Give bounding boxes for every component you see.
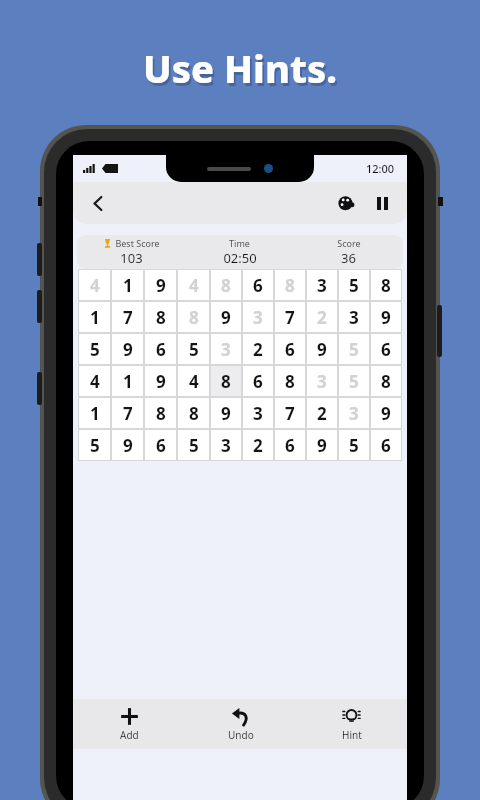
button[interactable]: 1 <box>111 365 144 397</box>
button[interactable]: 3 <box>338 397 370 429</box>
button[interactable]: Back <box>81 186 115 220</box>
staticText: 8 <box>381 370 391 393</box>
button[interactable]: 3 <box>306 269 338 301</box>
staticText: 9 <box>156 274 166 297</box>
staticText: 8 <box>285 370 295 393</box>
staticText: Score <box>337 237 361 249</box>
staticText: 9 <box>317 434 327 457</box>
button[interactable]: 6 <box>242 269 274 301</box>
button[interactable]: 5 <box>338 269 370 301</box>
staticText: 5 <box>349 370 359 393</box>
button[interactable]: 4 <box>177 365 210 397</box>
button[interactable]: 3 <box>242 301 274 333</box>
button[interactable]: 7 <box>274 301 306 333</box>
button[interactable]: 3 <box>210 429 242 461</box>
button[interactable]: 7 <box>111 301 144 333</box>
staticText: 5 <box>349 274 359 297</box>
button[interactable]: 8 <box>177 301 210 333</box>
button[interactable]: 3 <box>210 333 242 365</box>
staticText: 5 <box>189 434 199 457</box>
button[interactable]: 9 <box>370 397 402 429</box>
button[interactable]: 8 <box>370 365 402 397</box>
button[interactable]: 5 <box>338 365 370 397</box>
staticText: 6 <box>156 338 166 361</box>
staticText: 5 <box>349 338 359 361</box>
staticText: 7 <box>123 402 133 425</box>
button[interactable]: 9 <box>111 333 144 365</box>
button[interactable]: 1 <box>78 301 111 333</box>
button[interactable]: 5 <box>78 333 111 365</box>
staticText: 1 <box>90 306 100 329</box>
button[interactable]: 8 <box>144 397 177 429</box>
button[interactable]: 6 <box>274 333 306 365</box>
button[interactable]: Theme <box>331 188 361 218</box>
staticText: 8 <box>381 274 391 297</box>
button[interactable]: 6 <box>144 429 177 461</box>
button[interactable]: 8 <box>274 269 306 301</box>
button[interactable]: 9 <box>144 365 177 397</box>
button[interactable]: 1 <box>78 397 111 429</box>
staticText: 9 <box>317 338 327 361</box>
staticText: 7 <box>285 306 295 329</box>
button[interactable]: 6 <box>370 429 402 461</box>
staticText: Use Hints. <box>145 45 340 97</box>
button[interactable]: 8 <box>144 301 177 333</box>
staticText: 8 <box>189 306 199 329</box>
button[interactable]: 9 <box>306 429 338 461</box>
button[interactable]: 5 <box>177 333 210 365</box>
button[interactable]: 2 <box>306 301 338 333</box>
staticText: 3 <box>349 306 359 329</box>
button[interactable]: 2 <box>306 397 338 429</box>
button[interactable]: Pause <box>367 188 397 218</box>
button[interactable]: 6 <box>370 333 402 365</box>
staticText: 3 <box>221 338 231 361</box>
staticText: 6 <box>285 338 295 361</box>
staticText: 8 <box>221 274 231 297</box>
button[interactable]: 2 <box>242 333 274 365</box>
button[interactable]: 9 <box>144 269 177 301</box>
staticText: 3 <box>317 370 327 393</box>
button[interactable]: 5 <box>78 429 111 461</box>
button[interactable]: 5 <box>177 429 210 461</box>
staticText: 3 <box>253 306 263 329</box>
button[interactable]: 3 <box>338 301 370 333</box>
button[interactable]: 4 <box>78 365 111 397</box>
button[interactable]: 5 <box>338 333 370 365</box>
button[interactable]: 9 <box>111 429 144 461</box>
staticText: Use Hints. <box>143 42 338 94</box>
staticText: 6 <box>285 434 295 457</box>
staticText: 7 <box>285 402 295 425</box>
button[interactable]: 4 <box>177 269 210 301</box>
staticText: 4 <box>90 274 100 297</box>
staticText: 6 <box>156 434 166 457</box>
staticText: 2 <box>253 338 263 361</box>
button[interactable]: 7 <box>274 397 306 429</box>
button[interactable]: 9 <box>210 301 242 333</box>
button[interactable]: 6 <box>242 365 274 397</box>
button[interactable]: 8 <box>210 269 242 301</box>
button[interactable]: 6 <box>144 333 177 365</box>
button[interactable]: 3 <box>306 365 338 397</box>
button[interactable]: Undo <box>185 699 296 749</box>
button[interactable]: 3 <box>242 397 274 429</box>
button[interactable]: 6 <box>274 429 306 461</box>
button[interactable]: 8 <box>274 365 306 397</box>
button[interactable]: 2 <box>242 429 274 461</box>
button[interactable]: 8 <box>177 397 210 429</box>
staticText: 4 <box>90 370 100 393</box>
staticText: Undo <box>228 728 254 742</box>
button[interactable]: 9 <box>306 333 338 365</box>
staticText: 9 <box>156 370 166 393</box>
button[interactable]: 7 <box>111 397 144 429</box>
button[interactable]: Add <box>73 699 185 749</box>
button[interactable]: 8 <box>370 269 402 301</box>
staticText: 2 <box>317 306 327 329</box>
button[interactable]: 5 <box>338 429 370 461</box>
button[interactable]: 9 <box>370 301 402 333</box>
button[interactable]: 1 <box>111 269 144 301</box>
button[interactable]: 9 <box>210 397 242 429</box>
button[interactable]: 8 <box>210 365 242 397</box>
button[interactable]: Hint <box>296 699 407 749</box>
button[interactable]: 4 <box>78 269 111 301</box>
staticText: 6 <box>381 434 391 457</box>
